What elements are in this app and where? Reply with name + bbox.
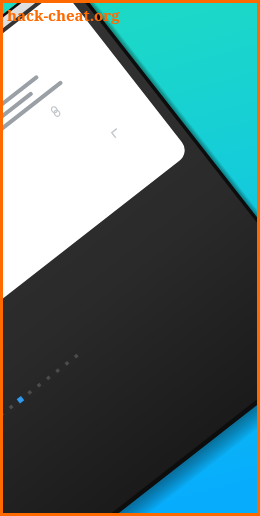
staticText: hack-cheat.org xyxy=(7,5,120,25)
button[interactable]: Phone screenshot preview xyxy=(0,0,260,516)
